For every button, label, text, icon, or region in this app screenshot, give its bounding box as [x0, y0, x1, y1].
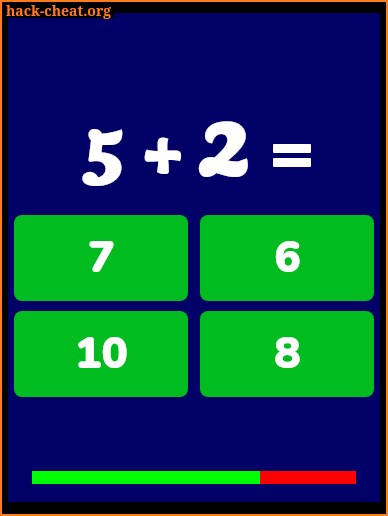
button[interactable]: 7: [14, 215, 188, 301]
button[interactable]: 8: [200, 311, 374, 397]
staticText: 6: [274, 228, 301, 288]
staticText: hack-cheat.org: [6, 1, 112, 20]
other: Time remaining: [32, 471, 356, 484]
staticText: 10: [75, 324, 128, 384]
staticText: 8: [274, 324, 301, 384]
button[interactable]: 10: [14, 311, 188, 397]
staticText: 7: [88, 228, 115, 288]
button[interactable]: 6: [200, 215, 374, 301]
staticText: 5: [82, 108, 125, 196]
staticText: +: [138, 112, 188, 201]
staticText: 2: [198, 98, 253, 197]
